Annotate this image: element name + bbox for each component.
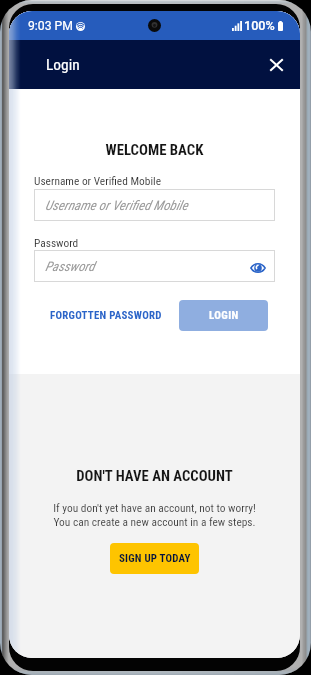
button[interactable]: Password — [34, 250, 275, 282]
staticText: WELCOME BACK — [34, 141, 275, 158]
staticText: Username or Verified Mobile — [45, 198, 188, 213]
staticText: If you don't yet have an account, not to… — [9, 501, 300, 529]
staticText: LOGIN — [209, 309, 239, 322]
staticText: 9:03 PM — [28, 19, 73, 33]
staticText: Password — [34, 236, 79, 249]
button[interactable]: LOGIN — [179, 300, 268, 331]
button[interactable]: FORGOTTEN PASSWORD — [34, 300, 170, 331]
staticText: FORGOTTEN PASSWORD — [50, 309, 162, 322]
button[interactable]: Username or Verified Mobile — [34, 189, 275, 221]
staticText: SIGN UP TODAY — [119, 552, 191, 565]
staticText: Password — [45, 259, 95, 274]
button[interactable]: Close — [259, 48, 293, 82]
staticText: 100% — [244, 18, 275, 33]
staticText: Login — [46, 56, 80, 74]
other: Show password — [250, 263, 266, 273]
staticText: DON'T HAVE AN ACCOUNT — [9, 467, 300, 484]
staticText: Username or Verified Mobile — [34, 174, 161, 187]
button[interactable]: SIGN UP TODAY — [110, 543, 199, 574]
